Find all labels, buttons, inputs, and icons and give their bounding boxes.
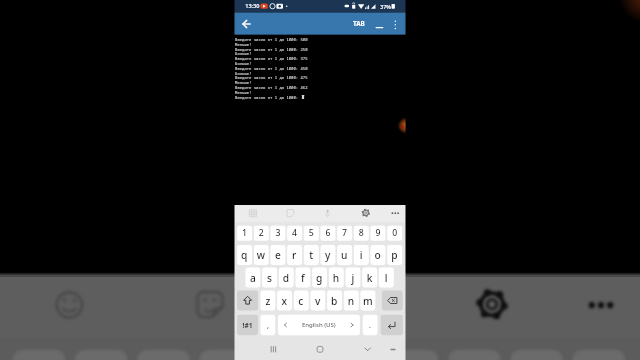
button[interactable]: Enter bbox=[381, 315, 403, 335]
button[interactable]: 4 bbox=[287, 226, 302, 241]
button[interactable]: Home bbox=[312, 338, 328, 360]
button[interactable]: v bbox=[310, 291, 325, 311]
button[interactable]: u bbox=[337, 245, 352, 265]
button[interactable]: More keyboard options bbox=[386, 205, 401, 222]
button[interactable]: k bbox=[362, 268, 377, 288]
button[interactable]: i bbox=[354, 245, 369, 265]
button[interactable]: Keyboard layouts bbox=[245, 205, 260, 222]
button[interactable]: Minimize bbox=[372, 17, 387, 32]
button[interactable]: 0 bbox=[387, 226, 402, 241]
button[interactable]: d bbox=[279, 268, 294, 288]
button[interactable]: y bbox=[320, 245, 335, 265]
button[interactable]: h bbox=[329, 268, 344, 288]
button[interactable]: 2 bbox=[254, 226, 269, 241]
button[interactable]: 6 bbox=[320, 226, 335, 241]
button[interactable]: w bbox=[254, 245, 269, 265]
button[interactable]: More options bbox=[388, 17, 403, 32]
button[interactable]: Voice input bbox=[320, 205, 335, 222]
button[interactable]: Symbols bbox=[237, 315, 258, 335]
button[interactable]: English (US) bbox=[278, 315, 360, 335]
button[interactable]: 1 bbox=[237, 226, 252, 241]
button[interactable]: o bbox=[370, 245, 385, 265]
button[interactable]: c bbox=[294, 291, 309, 311]
button[interactable]: e bbox=[270, 245, 285, 265]
button[interactable]: 5 bbox=[304, 226, 319, 241]
button[interactable]: m bbox=[360, 291, 375, 311]
button[interactable]: r bbox=[287, 245, 302, 265]
button[interactable]: Backspace bbox=[382, 291, 403, 311]
button[interactable]: Stickers bbox=[283, 205, 298, 222]
button[interactable]: z bbox=[260, 291, 275, 311]
button[interactable]: 7 bbox=[337, 226, 352, 241]
button[interactable]: 8 bbox=[354, 226, 369, 241]
button[interactable]: Shift bbox=[237, 291, 258, 311]
button[interactable]: s bbox=[262, 268, 277, 288]
button[interactable]: a bbox=[245, 268, 260, 288]
button[interactable]: p bbox=[387, 245, 402, 265]
button[interactable]: 9 bbox=[370, 226, 385, 241]
button[interactable]: j bbox=[345, 268, 360, 288]
button[interactable]: b bbox=[327, 291, 342, 311]
button[interactable]: q bbox=[237, 245, 252, 265]
button[interactable]: Hide keyboard bbox=[360, 338, 376, 360]
button[interactable]: , bbox=[261, 315, 276, 335]
button[interactable]: n bbox=[344, 291, 359, 311]
button[interactable]: x bbox=[277, 291, 292, 311]
button[interactable]: Back bbox=[240, 17, 254, 32]
button[interactable]: . bbox=[363, 315, 378, 335]
button[interactable]: Keyboard settings bbox=[358, 205, 373, 222]
button[interactable]: Recent apps bbox=[264, 338, 280, 360]
button[interactable]: t bbox=[304, 245, 319, 265]
button[interactable]: 3 bbox=[270, 226, 285, 241]
button[interactable]: g bbox=[312, 268, 327, 288]
button[interactable]: f bbox=[295, 268, 310, 288]
button[interactable]: l bbox=[379, 268, 394, 288]
button[interactable]: TAB bbox=[349, 17, 370, 32]
